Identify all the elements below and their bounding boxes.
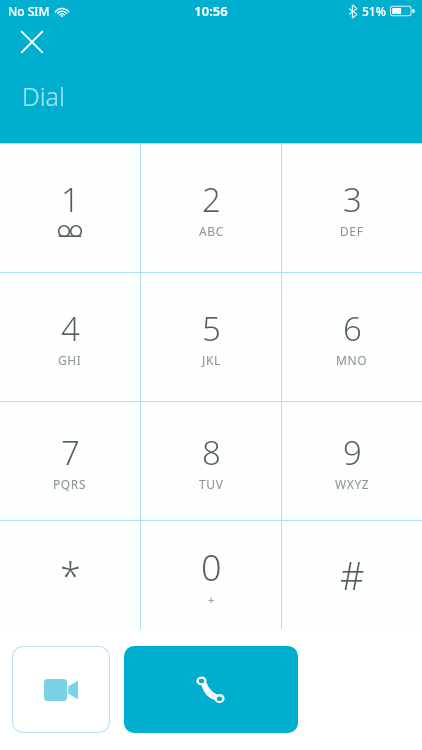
staticText: 3 [343, 177, 362, 222]
button[interactable]: 0 [141, 521, 281, 629]
button[interactable]: 8 [141, 402, 281, 520]
staticText: DEF [340, 223, 364, 239]
button[interactable]: 1 [0, 143, 140, 272]
button[interactable]: 7 [0, 402, 140, 520]
button[interactable]: Video call [12, 646, 110, 733]
button[interactable]: 3 [282, 143, 422, 272]
staticText: No SIM [8, 3, 50, 19]
staticText: PQRS [53, 476, 87, 492]
button[interactable]: 2 [141, 143, 281, 272]
staticText: TUV [199, 476, 224, 492]
staticText: 9 [343, 430, 362, 475]
staticText: 1 [61, 177, 80, 222]
staticText: Dial [22, 79, 65, 113]
button[interactable]: Close [10, 20, 54, 64]
staticText: 10:56 [194, 2, 228, 20]
button[interactable]: 4 [0, 273, 140, 401]
button[interactable]: 9 [282, 402, 422, 520]
button[interactable]: 5 [141, 273, 281, 401]
staticText: 6 [343, 306, 362, 351]
staticText: ABC [199, 223, 224, 239]
staticText: 7 [61, 430, 80, 475]
staticText: 5 [202, 306, 221, 351]
button[interactable]: Call [124, 646, 298, 733]
staticText: # [340, 549, 365, 601]
button[interactable]: 6 [282, 273, 422, 401]
staticText: WXYZ [335, 476, 370, 492]
button[interactable]: * [0, 521, 140, 629]
staticText: MNO [336, 352, 368, 368]
staticText: GHI [58, 352, 82, 368]
staticText: JKL [202, 352, 221, 368]
staticText: 8 [202, 430, 221, 475]
staticText: + [208, 592, 215, 607]
staticText: 51% [362, 3, 386, 19]
staticText: 4 [61, 306, 80, 351]
button[interactable]: # [282, 521, 422, 629]
staticText: 0 [201, 543, 222, 592]
staticText: * [60, 549, 81, 601]
staticText: 2 [202, 177, 221, 222]
